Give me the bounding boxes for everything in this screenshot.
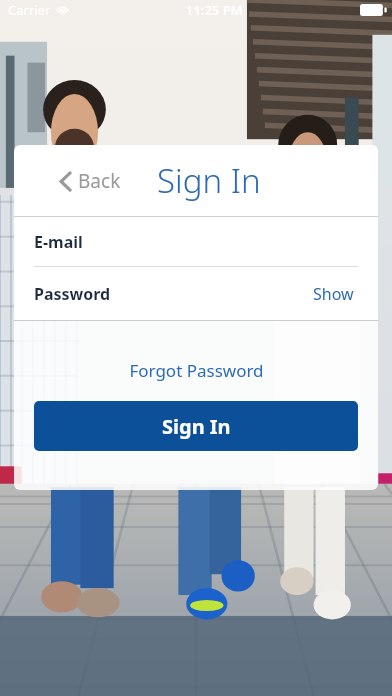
staticText: Sign In	[162, 413, 231, 440]
staticText: Show	[313, 283, 354, 305]
staticText: Forgot Password	[129, 359, 264, 382]
staticText: Password	[34, 283, 111, 305]
button[interactable]: Forgot Password	[119, 355, 274, 386]
staticText: Back	[78, 168, 121, 194]
staticText: 11:25 PM	[186, 1, 243, 19]
button[interactable]: E-mail	[14, 217, 378, 267]
staticText: Carrier	[8, 1, 51, 19]
staticText: E-mail	[34, 231, 83, 253]
button[interactable]: Show	[309, 277, 358, 311]
staticText: Sign In	[157, 158, 261, 203]
button[interactable]: Back	[54, 162, 127, 200]
button[interactable]: Password	[34, 267, 309, 320]
button[interactable]: Sign In	[34, 401, 358, 451]
